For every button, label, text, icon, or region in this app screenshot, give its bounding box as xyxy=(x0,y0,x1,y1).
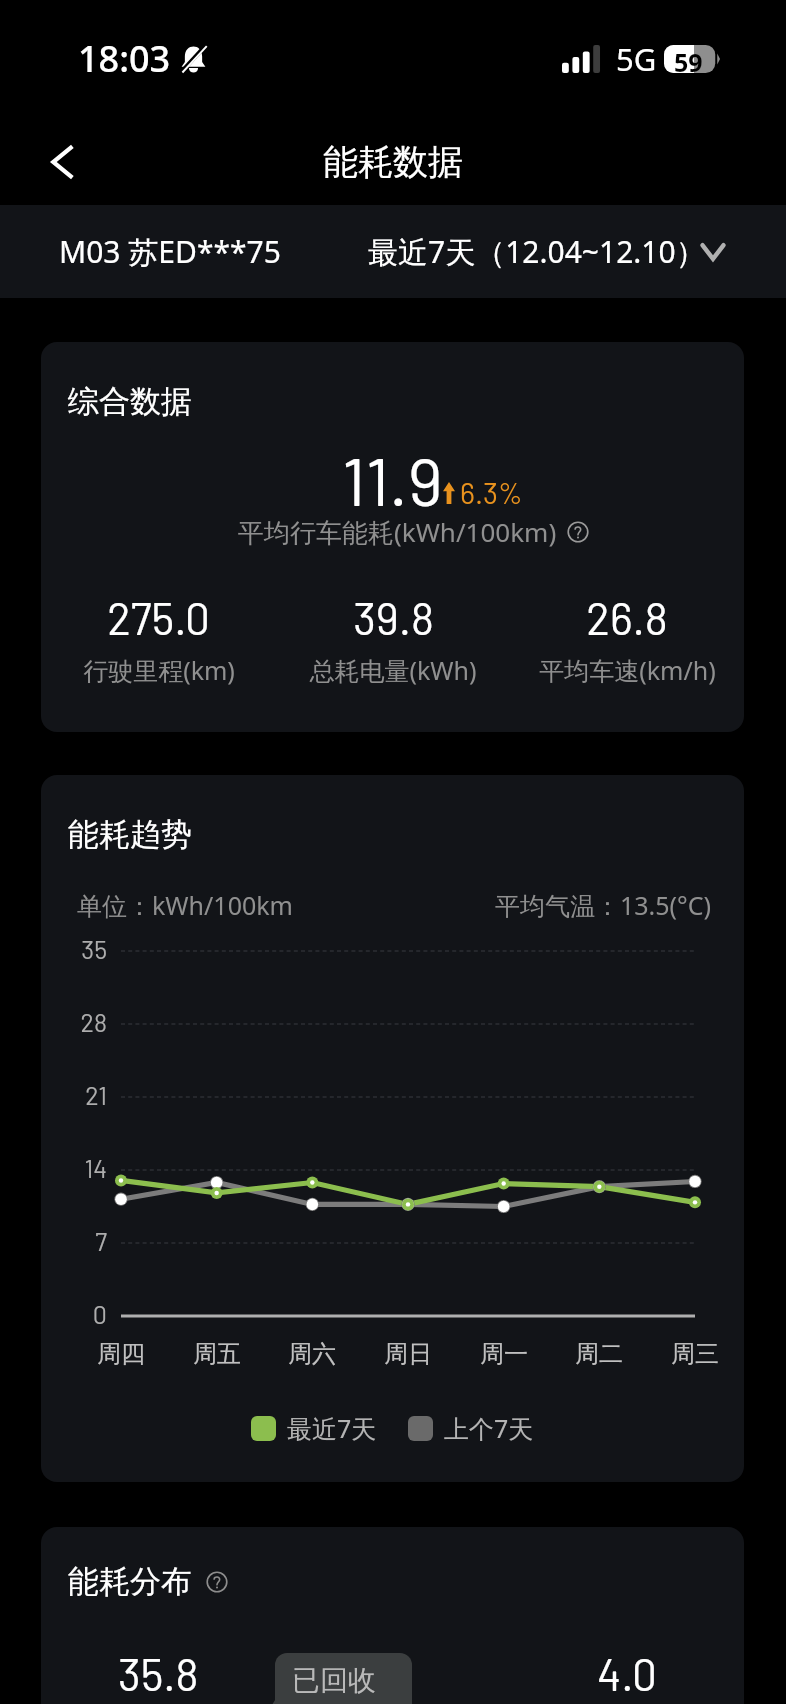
staticText: 总耗电量(kWh) xyxy=(309,653,477,687)
staticText: 5G xyxy=(616,38,657,80)
staticText: 周日 xyxy=(368,1339,448,1369)
button[interactable]: Back xyxy=(30,130,94,194)
staticText: 周四 xyxy=(81,1339,161,1369)
staticText: 最近7天（12.04~12.10） xyxy=(368,231,706,272)
staticText: 周五 xyxy=(177,1339,257,1369)
staticText: 35 xyxy=(45,934,107,964)
staticText: 14 xyxy=(45,1153,107,1183)
staticText: 单位：kWh/100km xyxy=(77,888,293,922)
staticText: 39.8 xyxy=(353,591,434,644)
staticText: 能耗趋势 xyxy=(68,815,192,854)
staticText: 行驶里程(km) xyxy=(83,653,235,687)
staticText: 18:03 xyxy=(78,34,171,83)
staticText: 平均气温：13.5(°C) xyxy=(495,888,712,922)
staticText: 周二 xyxy=(559,1339,639,1369)
staticText: 26.8 xyxy=(586,591,668,644)
staticText: 能耗数据 xyxy=(323,140,463,184)
button[interactable]: 最近7天 xyxy=(251,1411,377,1445)
staticText: 周六 xyxy=(272,1339,352,1369)
staticText: 6.3% xyxy=(460,475,523,510)
staticText: 59 xyxy=(674,45,703,73)
staticText: 已回收 xyxy=(292,1663,376,1698)
button[interactable]: 上个7天 xyxy=(408,1411,534,1445)
staticText: M03 苏ED***75 xyxy=(59,231,281,272)
staticText: 平均行车能耗(kWh/100km) xyxy=(238,514,557,550)
staticText: 21 xyxy=(45,1080,107,1110)
staticText: 7 xyxy=(45,1226,107,1256)
staticText: 11.9 xyxy=(342,439,443,519)
staticText: 35.8 xyxy=(118,1647,199,1700)
staticText: 最近7天 xyxy=(287,1411,377,1445)
staticText: 综合数据 xyxy=(68,382,192,421)
staticText: 4.0 xyxy=(597,1647,657,1700)
staticText: 上个7天 xyxy=(444,1411,534,1445)
staticText: 周三 xyxy=(655,1339,735,1369)
staticText: 能耗分布 xyxy=(68,1562,192,1601)
staticText: 0 xyxy=(45,1299,107,1329)
staticText: 周一 xyxy=(464,1339,544,1369)
staticText: 28 xyxy=(45,1007,107,1037)
button[interactable]: 最近7天（12.04~12.10） xyxy=(368,231,730,272)
staticText: 平均车速(km/h) xyxy=(539,653,716,687)
staticText: 275.0 xyxy=(107,591,210,644)
